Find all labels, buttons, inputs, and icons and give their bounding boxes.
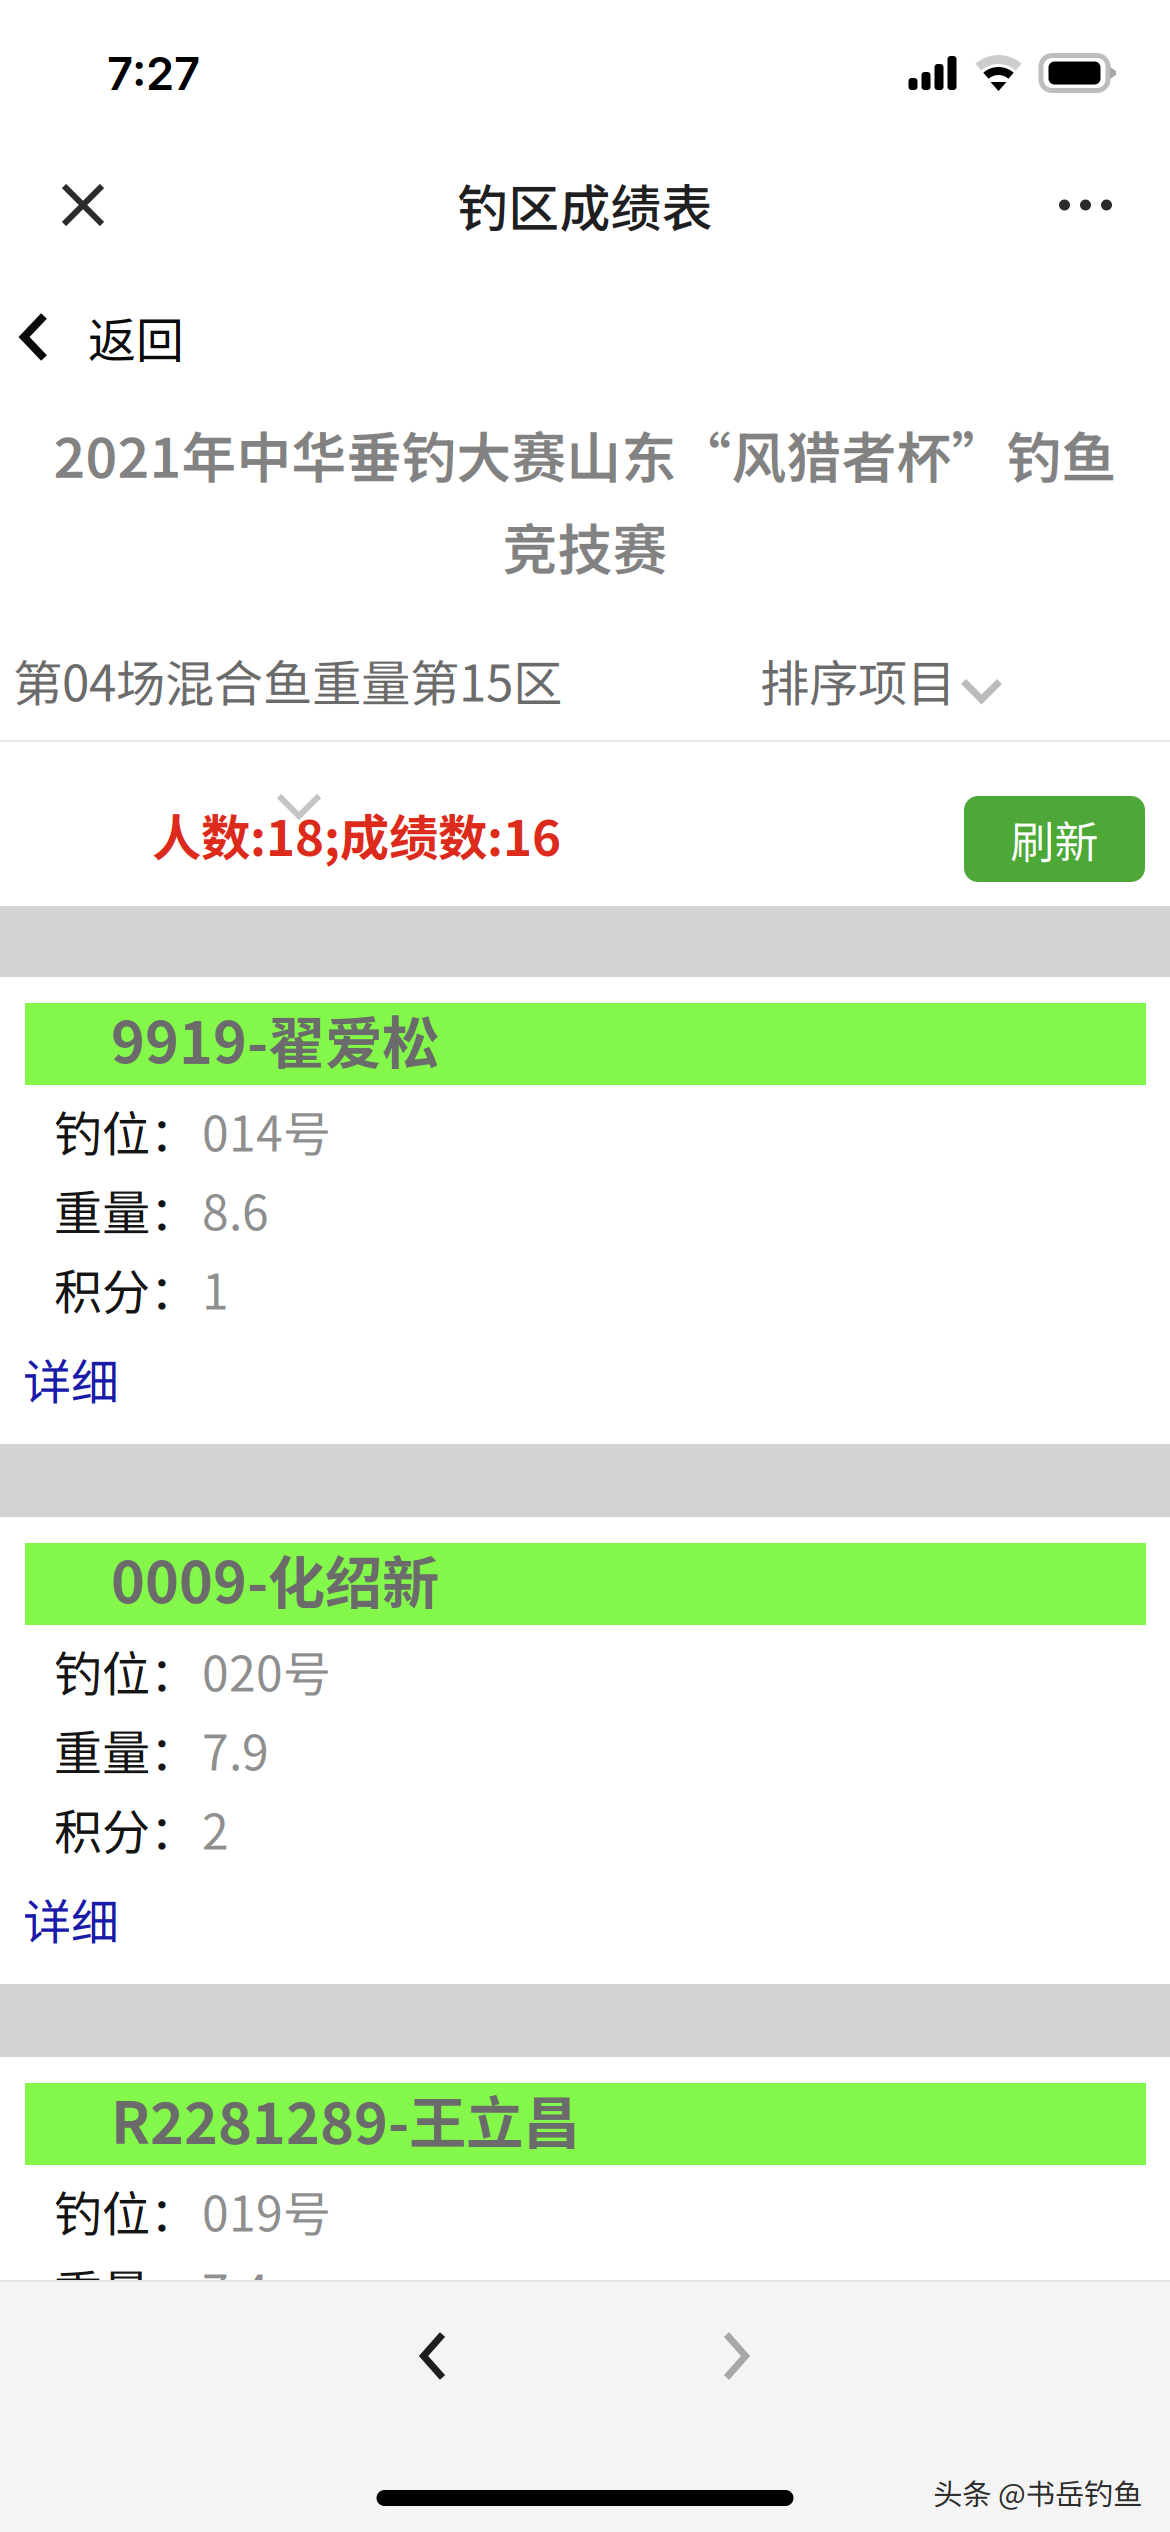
staticText: 刷新	[1010, 807, 1098, 871]
staticText: 重量：	[54, 1175, 198, 1244]
button[interactable]: 前进	[693, 2301, 779, 2411]
staticText: 钓区成绩表	[457, 168, 712, 242]
staticText: R2281289-王立昌	[111, 2077, 580, 2160]
staticText: 排序项目	[760, 644, 956, 716]
staticText: 竞技赛	[502, 506, 667, 586]
staticText: 014号	[202, 1096, 331, 1165]
button[interactable]: 排序项目	[0, 623, 1170, 732]
button[interactable]: 后退	[390, 2301, 476, 2411]
staticText: 1	[202, 1254, 229, 1323]
staticText: 第04场混合鱼重量第15区	[13, 644, 562, 716]
button[interactable]: 详细	[0, 1862, 1170, 1984]
staticText: 0009-化绍新	[111, 1537, 439, 1620]
button[interactable]: 刷新	[964, 766, 1170, 882]
button[interactable]: 关闭	[0, 132, 146, 278]
button[interactable]: 更多	[1019, 132, 1170, 278]
staticText: 020号	[202, 1636, 331, 1705]
staticText: 人数:18;成绩数:16	[152, 799, 561, 870]
staticText: 返回	[88, 302, 184, 372]
staticText: 019号	[202, 2176, 331, 2245]
staticText: 2021年中华垂钓大赛山东“风猎者杯”钓鱼	[53, 414, 1116, 494]
staticText: 详细	[23, 1884, 119, 1953]
staticText: 积分：	[54, 1254, 198, 1323]
button[interactable]: 返回	[0, 287, 1170, 387]
staticText: 钓位：	[54, 2176, 198, 2245]
staticText: 头条 @书岳钓鱼	[933, 2471, 1142, 2513]
staticText: 7:27	[107, 46, 200, 101]
staticText: 重量：	[54, 1715, 198, 1784]
staticText: 钓位：	[54, 1636, 198, 1705]
staticText: 重量：	[54, 2255, 198, 2324]
staticText: 9919-翟爱松	[111, 997, 439, 1080]
staticText: 积分：	[54, 1794, 198, 1863]
button[interactable]: 详细	[0, 1322, 1170, 1444]
staticText: 7.4	[202, 2255, 269, 2324]
staticText: 详细	[23, 1344, 119, 1413]
staticText: 2	[202, 1794, 229, 1863]
staticText: 钓位：	[54, 1096, 198, 1165]
staticText: 8.6	[202, 1175, 269, 1244]
staticText: 7.9	[202, 1715, 269, 1784]
